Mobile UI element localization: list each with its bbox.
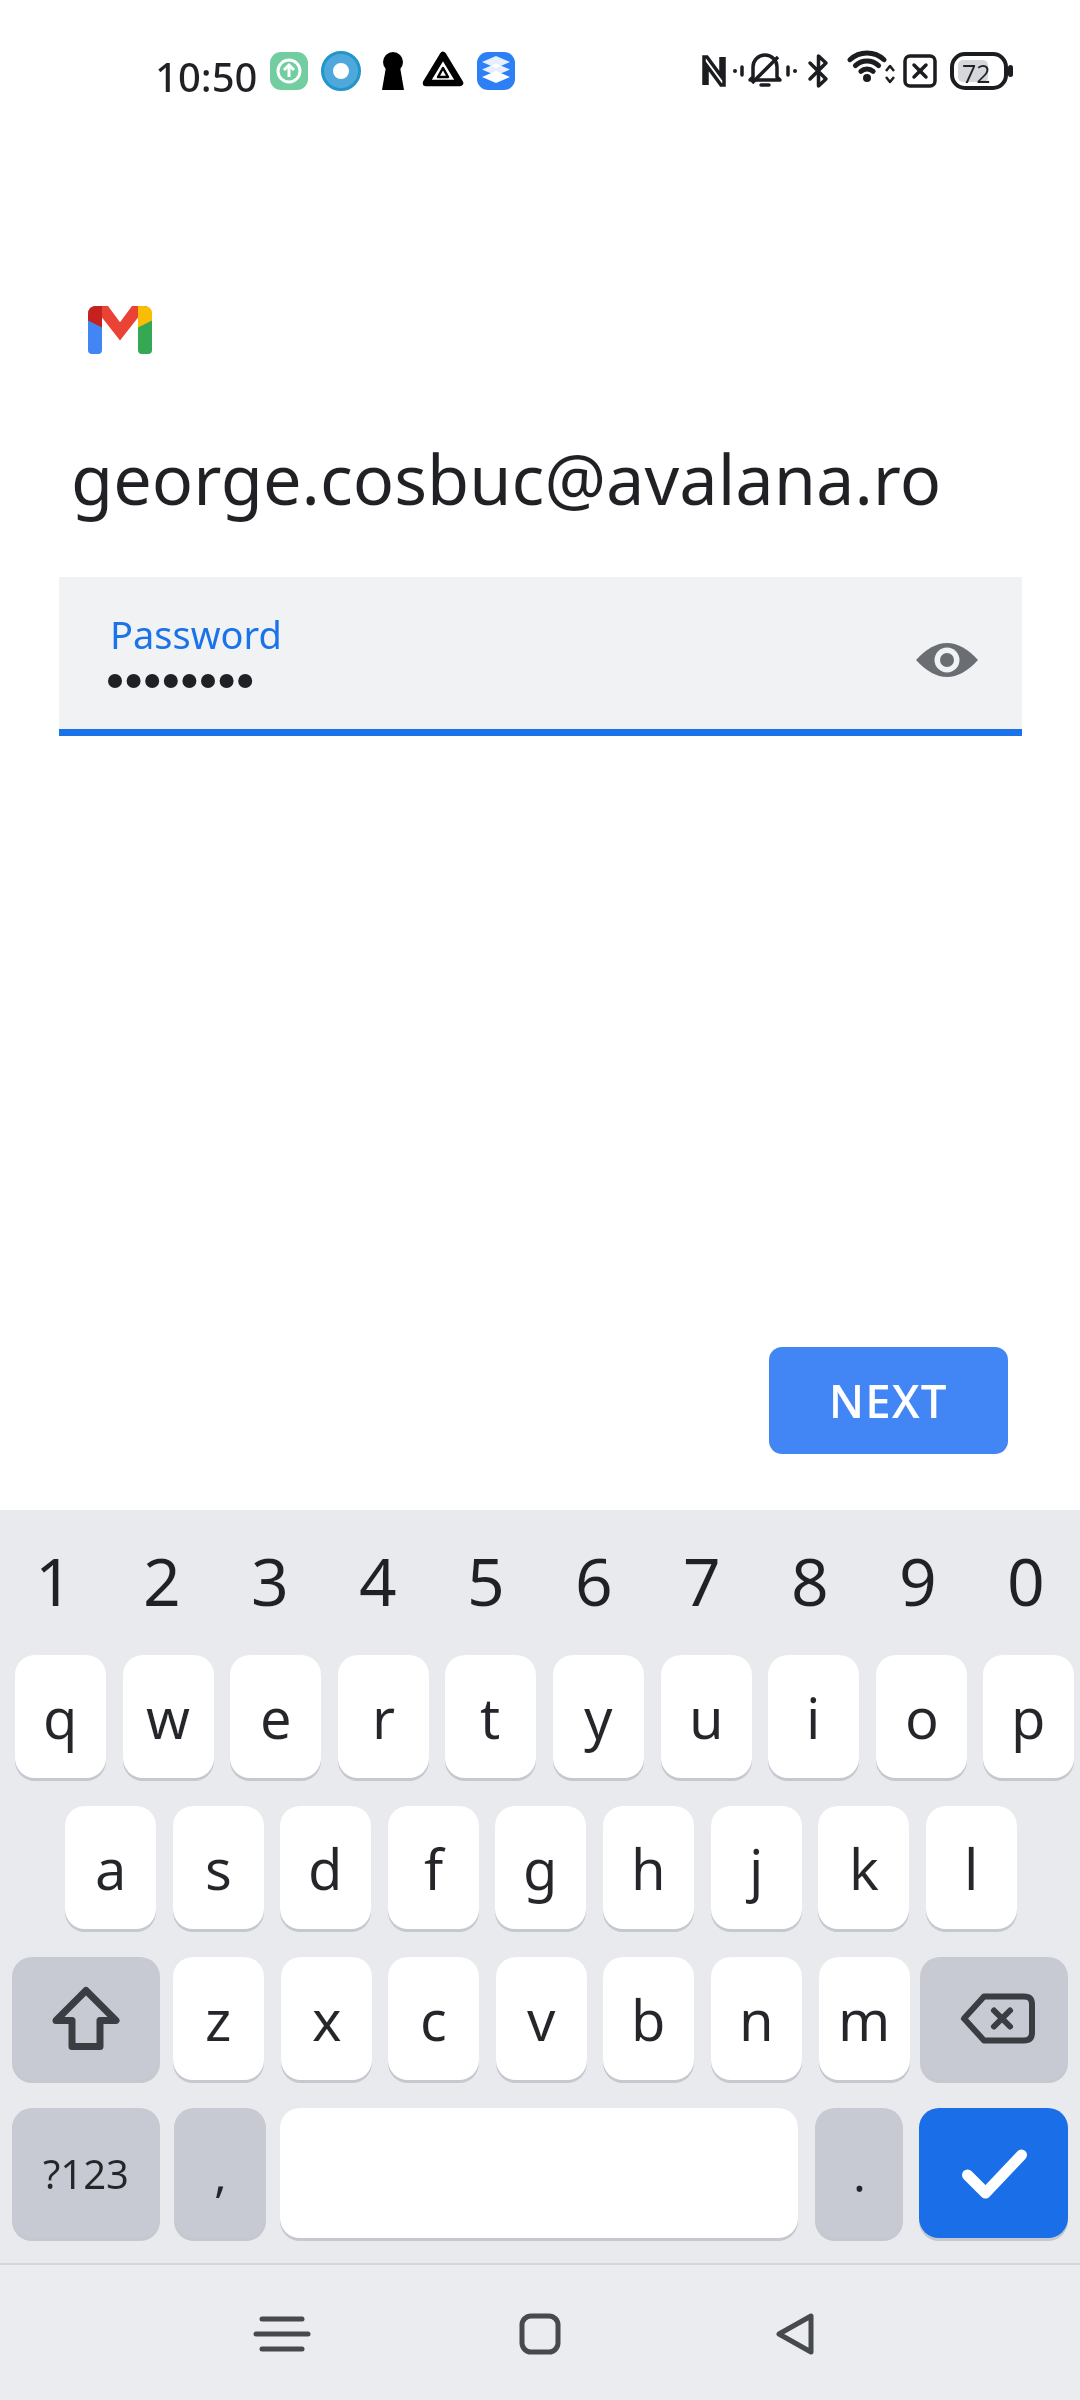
staticText: p (1011, 1679, 1046, 1755)
button[interactable]: , (174, 2108, 266, 2238)
staticText: 8 (791, 1535, 829, 1625)
button[interactable]: NEXT (769, 1347, 1008, 1454)
button[interactable]: o (876, 1655, 967, 1778)
button[interactable] (919, 2108, 1068, 2238)
button[interactable]: 8 (756, 1510, 864, 1650)
staticText: . (853, 2141, 866, 2206)
button[interactable]: m (819, 1957, 910, 2080)
staticText: 10:50 (155, 49, 258, 103)
staticText: 2 (143, 1535, 181, 1625)
button[interactable]: 2 (108, 1510, 216, 1650)
button[interactable]: y (553, 1655, 644, 1778)
staticText: 9 (899, 1535, 937, 1625)
button[interactable]: f (388, 1806, 479, 1929)
staticText: r (372, 1679, 396, 1755)
staticText: 72 (962, 56, 991, 90)
staticText: f (424, 1830, 444, 1906)
staticText: b (631, 1981, 666, 2057)
button[interactable]: b (603, 1957, 694, 2080)
button[interactable]: k (818, 1806, 909, 1929)
button[interactable]: ?123 (12, 2108, 160, 2238)
button[interactable]: 7 (648, 1510, 756, 1650)
button[interactable]: 0 (972, 1510, 1080, 1650)
staticText: 6 (575, 1535, 613, 1625)
button[interactable]: 4 (324, 1510, 432, 1650)
button[interactable]: w (123, 1655, 214, 1778)
staticText: o (905, 1679, 939, 1755)
button[interactable]: 3 (216, 1510, 324, 1650)
button[interactable]: z (173, 1957, 264, 2080)
staticText: y (584, 1679, 613, 1755)
staticText: v (527, 1981, 556, 2057)
staticText: d (308, 1830, 343, 1906)
staticText: w (146, 1679, 191, 1755)
button[interactable] (360, 2263, 720, 2400)
button[interactable] (720, 2263, 1080, 2400)
button[interactable]: x (281, 1957, 372, 2080)
button[interactable]: i (768, 1655, 859, 1778)
staticText: m (838, 1981, 891, 2057)
button[interactable]: g (495, 1806, 586, 1929)
staticText: 3 (251, 1535, 289, 1625)
button[interactable]: q (15, 1655, 106, 1778)
button[interactable]: l (926, 1806, 1017, 1929)
staticText: x (312, 1981, 342, 2057)
staticText: l (964, 1830, 979, 1906)
staticText: NEXT (829, 1370, 948, 1431)
button[interactable]: t (445, 1655, 536, 1778)
button[interactable]: v (496, 1957, 587, 2080)
button[interactable]: 1 (0, 1510, 108, 1650)
staticText: , (214, 2141, 227, 2206)
button[interactable]: 9 (864, 1510, 972, 1650)
staticText: ?123 (43, 2146, 129, 2200)
staticText: s (205, 1830, 232, 1906)
staticText: 4 (359, 1535, 397, 1625)
button[interactable]: c (388, 1957, 479, 2080)
button[interactable]: . (815, 2108, 903, 2238)
staticText: c (420, 1981, 447, 2057)
button[interactable]: e (230, 1655, 321, 1778)
button[interactable]: n (711, 1957, 802, 2080)
staticText: 1 (35, 1535, 73, 1625)
button[interactable]: s (173, 1806, 264, 1929)
staticText: e (260, 1679, 292, 1755)
staticText: h (631, 1830, 666, 1906)
staticText: a (95, 1830, 127, 1906)
staticText: k (849, 1830, 879, 1906)
button[interactable]: j (711, 1806, 802, 1929)
staticText: Password (110, 608, 282, 660)
button[interactable] (920, 1957, 1068, 2080)
staticText: j (749, 1830, 764, 1906)
button[interactable]: p (983, 1655, 1074, 1778)
button[interactable]: h (603, 1806, 694, 1929)
staticText: q (43, 1679, 78, 1755)
staticText: z (205, 1981, 232, 2057)
staticText: i (806, 1679, 821, 1755)
staticText: t (480, 1679, 501, 1755)
staticText: n (739, 1981, 774, 2057)
button[interactable]: 6 (540, 1510, 648, 1650)
button[interactable]: d (280, 1806, 371, 1929)
button[interactable]: r (338, 1655, 429, 1778)
staticText: 5 (467, 1535, 505, 1625)
button[interactable]: 5 (432, 1510, 540, 1650)
button[interactable]: Password (59, 577, 1022, 736)
button[interactable]: u (661, 1655, 752, 1778)
staticText: 0 (1007, 1535, 1045, 1625)
button[interactable]: a (65, 1806, 156, 1929)
staticText: g (523, 1830, 558, 1906)
staticText: 7 (683, 1535, 721, 1625)
staticText: george.cosbuc@avalana.ro (71, 432, 942, 525)
button[interactable] (0, 2263, 360, 2400)
button[interactable] (12, 1957, 160, 2080)
staticText: u (689, 1679, 724, 1755)
